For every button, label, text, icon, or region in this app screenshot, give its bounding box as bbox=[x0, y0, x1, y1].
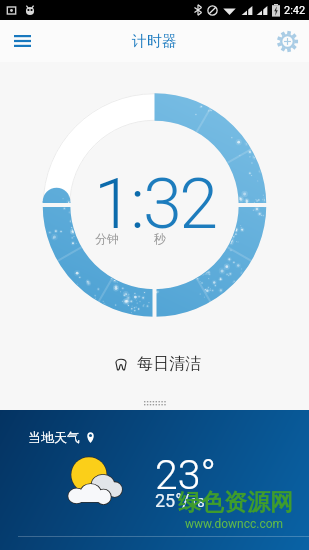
staticText: 1: bbox=[94, 163, 143, 245]
button[interactable]: 每日清洁 bbox=[115, 354, 201, 374]
staticText: 18° bbox=[190, 495, 210, 510]
staticText: 分钟 bbox=[95, 231, 119, 246]
staticText: 当地天气 bbox=[28, 429, 80, 445]
staticText: 绿色资源网 bbox=[178, 488, 293, 517]
staticText: 25°/ bbox=[155, 490, 190, 511]
staticText: 23° bbox=[155, 451, 216, 499]
staticText: 2:42 bbox=[284, 4, 306, 17]
staticText: 计时器 bbox=[132, 32, 177, 51]
staticText: 秒 bbox=[154, 231, 166, 246]
staticText: www.downcc.com bbox=[185, 517, 284, 531]
button[interactable]: Open navigation menu bbox=[0, 20, 44, 62]
button[interactable]: Settings bbox=[265, 20, 309, 62]
staticText: 每日清洁 bbox=[137, 354, 201, 374]
staticText: 32 bbox=[143, 163, 216, 245]
